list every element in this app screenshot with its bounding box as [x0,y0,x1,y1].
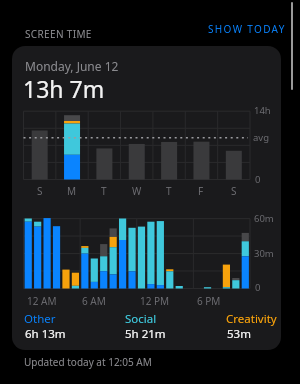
staticText: 0 [255,173,261,186]
staticText: W [132,184,142,196]
staticText: 0 [255,281,261,294]
staticText: SCREEN TIME [25,27,92,41]
staticText: 13h 7m [23,73,105,104]
button[interactable]: SHOW TODAY [201,21,286,37]
staticText: 14h [254,104,271,117]
staticText: T [101,184,107,196]
staticText: S [37,184,43,196]
staticText: Social [125,311,157,327]
staticText: T [166,184,172,196]
staticText: M [67,184,77,196]
staticText: 6 AM [82,294,106,308]
staticText: S [231,184,237,196]
staticText: 53m [227,326,251,342]
staticText: Updated today at 12:05 AM [24,355,152,369]
staticText: Other [24,311,56,327]
staticText: avg [253,131,269,144]
staticText: 6 PM [197,294,221,308]
staticText: SHOW TODAY [208,22,286,36]
staticText: 12 PM [140,294,170,308]
staticText: 5h 21m [125,326,166,342]
staticText: 6h 13m [25,326,66,342]
staticText: 12 AM [27,294,57,308]
staticText: 60m [254,212,274,225]
staticText: Monday, June 12 [25,58,119,74]
staticText: 30m [254,247,274,260]
staticText: F [198,184,204,196]
staticText: Creativity [226,311,277,327]
